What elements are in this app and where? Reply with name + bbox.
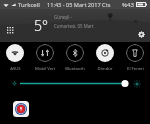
- staticText: El Feneri: [127, 66, 144, 71]
- staticText: %43: [122, 1, 134, 9]
- button[interactable]: Settings: [136, 29, 147, 40]
- staticText: 11:43 - 05 Mart 2017 Cts: [47, 1, 111, 9]
- staticText: Güneşli -: [54, 14, 73, 20]
- staticText: Mobil Veri: [35, 66, 55, 71]
- staticText: 5°: [34, 16, 48, 35]
- button[interactable]: Döndür: [90, 44, 120, 71]
- button[interactable]: Mobil Veri: [30, 44, 60, 71]
- button[interactable]: Notification: [13, 101, 29, 117]
- staticText: Bluetooth: [65, 66, 85, 71]
- button[interactable]: Apps: [3, 23, 18, 38]
- button[interactable]: El Feneri: [120, 44, 150, 71]
- staticText: Turkcell: [18, 1, 40, 9]
- staticText: Döndür: [97, 66, 113, 71]
- button[interactable]: ASUS: [0, 44, 30, 71]
- button[interactable]: Bluetooth: [60, 44, 90, 71]
- staticText: ASUS: [10, 66, 21, 71]
- staticText: Cumartesi, 05 Mart: [54, 23, 94, 29]
